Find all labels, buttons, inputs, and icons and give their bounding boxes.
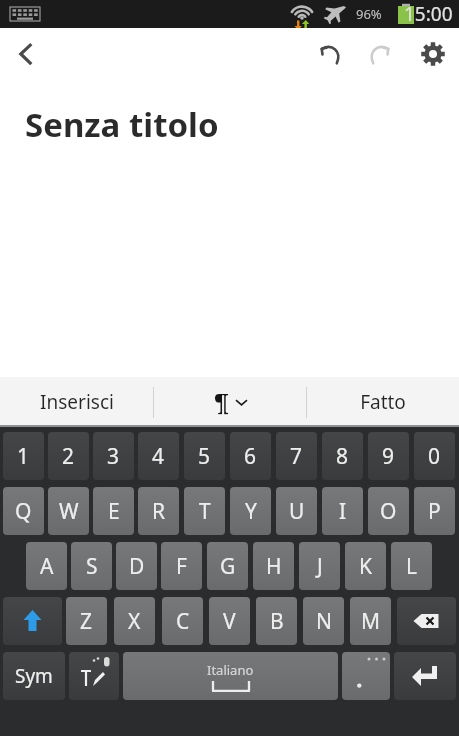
button[interactable]: Q: [3, 487, 44, 535]
button[interactable]: L: [391, 542, 432, 590]
staticText: Senza titolo: [25, 102, 219, 147]
button[interactable]: Undo: [303, 28, 355, 80]
button[interactable]: U: [276, 487, 317, 535]
staticText: 1: [17, 442, 30, 471]
button[interactable]: E: [93, 487, 134, 535]
button[interactable]: S: [71, 542, 112, 590]
staticText: V: [223, 607, 236, 636]
button[interactable]: T: [184, 487, 225, 535]
staticText: 3: [107, 442, 120, 471]
staticText: U: [289, 497, 305, 526]
button[interactable]: Shift: [3, 597, 62, 645]
staticText: C: [176, 607, 190, 636]
staticText: J: [317, 552, 323, 581]
button[interactable]: Backspace: [397, 597, 456, 645]
button[interactable]: 4: [138, 432, 179, 480]
button[interactable]: G: [207, 542, 248, 590]
staticText: D: [129, 552, 145, 581]
staticText: L: [406, 552, 418, 581]
button[interactable]: 3: [93, 432, 134, 480]
button[interactable]: Inserisci: [0, 377, 153, 427]
button[interactable]: W: [48, 487, 89, 535]
button[interactable]: N: [303, 597, 344, 645]
button[interactable]: Italiano: [123, 652, 338, 700]
button[interactable]: 5: [184, 432, 225, 480]
button[interactable]: X: [114, 597, 155, 645]
button[interactable]: 6: [230, 432, 271, 480]
button[interactable]: V: [209, 597, 250, 645]
button[interactable]: Paragraph style: [154, 377, 306, 427]
staticText: 96%: [356, 5, 382, 23]
button[interactable]: Redo: [355, 28, 407, 80]
button[interactable]: 1: [3, 432, 44, 480]
staticText: N: [316, 607, 332, 636]
button[interactable]: Period: [342, 652, 390, 700]
staticText: M: [361, 607, 381, 636]
button[interactable]: H: [253, 542, 294, 590]
staticText: W: [59, 497, 79, 526]
button[interactable]: O: [368, 487, 409, 535]
staticText: H: [266, 552, 282, 581]
staticText: 6: [244, 442, 257, 471]
button[interactable]: P: [414, 487, 455, 535]
button[interactable]: Fatto: [307, 377, 459, 427]
button[interactable]: Y: [230, 487, 271, 535]
staticText: G: [220, 552, 236, 581]
staticText: T: [199, 497, 211, 526]
staticText: Italiano: [207, 661, 254, 679]
staticText: E: [108, 497, 120, 526]
staticText: O: [380, 497, 397, 526]
staticText: I: [339, 497, 347, 526]
staticText: Y: [245, 497, 257, 526]
button[interactable]: 0: [414, 432, 455, 480]
staticText: 5: [198, 442, 211, 471]
button[interactable]: Enter: [394, 652, 456, 700]
staticText: 8: [336, 442, 349, 471]
staticText: 15:00: [404, 1, 453, 27]
button[interactable]: Handwriting input: [69, 652, 119, 700]
staticText: Sym: [15, 663, 53, 689]
button[interactable]: R: [138, 487, 179, 535]
staticText: 9: [382, 442, 395, 471]
button[interactable]: M: [350, 597, 391, 645]
button[interactable]: 9: [368, 432, 409, 480]
button[interactable]: I: [322, 487, 363, 535]
staticText: ¶: [214, 386, 230, 419]
button[interactable]: J: [299, 542, 340, 590]
button[interactable]: B: [256, 597, 297, 645]
staticText: 7: [290, 442, 303, 471]
button[interactable]: Sym: [3, 652, 65, 700]
staticText: 4: [152, 442, 165, 471]
staticText: R: [152, 497, 166, 526]
button[interactable]: D: [116, 542, 157, 590]
button[interactable]: Back: [0, 28, 52, 80]
staticText: Q: [15, 497, 32, 526]
button[interactable]: F: [161, 542, 202, 590]
button[interactable]: Z: [66, 597, 107, 645]
staticText: F: [176, 552, 187, 581]
staticText: Fatto: [360, 389, 406, 415]
staticText: P: [428, 497, 441, 526]
button[interactable]: C: [162, 597, 203, 645]
button[interactable]: 2: [48, 432, 89, 480]
button[interactable]: K: [345, 542, 386, 590]
button[interactable]: 7: [276, 432, 317, 480]
staticText: X: [128, 607, 141, 636]
staticText: 2: [62, 442, 75, 471]
staticText: B: [270, 607, 284, 636]
button[interactable]: 8: [322, 432, 363, 480]
staticText: Z: [80, 607, 93, 636]
staticText: K: [359, 552, 372, 581]
staticText: Inserisci: [40, 389, 114, 415]
staticText: S: [86, 552, 98, 581]
button[interactable]: A: [26, 542, 67, 590]
staticText: A: [40, 552, 54, 581]
button[interactable]: Settings: [407, 28, 459, 80]
staticText: 0: [428, 442, 441, 471]
